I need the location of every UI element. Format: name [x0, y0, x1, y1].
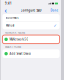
staticText: Manual: [6, 24, 15, 27]
button[interactable]: Automatic: [2, 14, 60, 21]
staticText: MyNetwork-5G: [9, 38, 28, 41]
button[interactable]: Done: [50, 7, 58, 14]
staticText: Add Smart Device: [9, 52, 31, 55]
button[interactable]: MyNetwork-5G: [2, 35, 60, 44]
staticText: Configure SSID: [20, 9, 41, 12]
staticText: Done: [50, 9, 58, 12]
button[interactable]: Add Smart Device: [2, 49, 60, 58]
staticText: SMART HOME: [5, 45, 21, 49]
staticText: Automatic: [6, 16, 19, 19]
button[interactable]: Manual: [2, 22, 60, 29]
staticText: ✓: [53, 23, 56, 28]
button[interactable]: Back: [2, 7, 8, 14]
staticText: 9:41: [5, 2, 12, 5]
staticText: ‹: [4, 6, 6, 15]
staticText: NETWORK NAME: [5, 31, 25, 34]
